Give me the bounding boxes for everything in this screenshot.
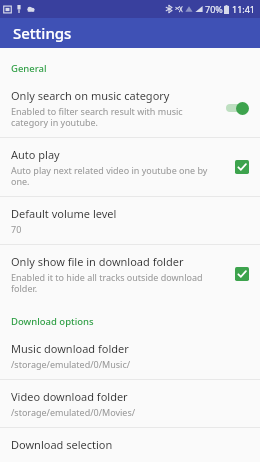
staticText: Enabled to filter search result with mus… (11, 105, 216, 128)
button[interactable]: Only search on music category (0, 79, 260, 137)
button[interactable]: Enabled checkbox (232, 264, 252, 284)
button[interactable]: Default volume level (0, 197, 260, 244)
button[interactable]: Download selection (0, 428, 260, 462)
staticText: 11:41 (232, 3, 256, 15)
staticText: General (11, 62, 47, 75)
staticText: 70% (205, 3, 223, 15)
staticText: Settings (13, 23, 72, 43)
staticText: Video download folder (11, 389, 128, 404)
staticText: Music download folder (11, 341, 129, 356)
button[interactable]: Video download folder (0, 380, 260, 427)
staticText: Only show file in download folder (11, 254, 184, 269)
staticText: Enabled it to hide all tracks outside do… (11, 271, 224, 294)
staticText: 70 (11, 223, 22, 235)
staticText: Download selection (11, 437, 113, 452)
staticText: /storage/emulated/0/Music/ (11, 358, 131, 370)
button[interactable]: Toggle only search on music category (224, 98, 252, 118)
staticText: Only search on music category (11, 88, 170, 103)
staticText: Auto play (11, 147, 60, 162)
button[interactable]: Enabled checkbox (232, 157, 252, 177)
staticText: Download options (11, 315, 94, 328)
staticText: /storage/emulated/0/Movies/ (11, 406, 136, 418)
button[interactable]: Music download folder (0, 332, 260, 379)
staticText: Default volume level (11, 206, 117, 221)
staticText: Auto play next related video in youtube … (11, 164, 224, 187)
button[interactable]: Only show file in download folder (0, 245, 260, 303)
button[interactable]: Auto play (0, 138, 260, 196)
